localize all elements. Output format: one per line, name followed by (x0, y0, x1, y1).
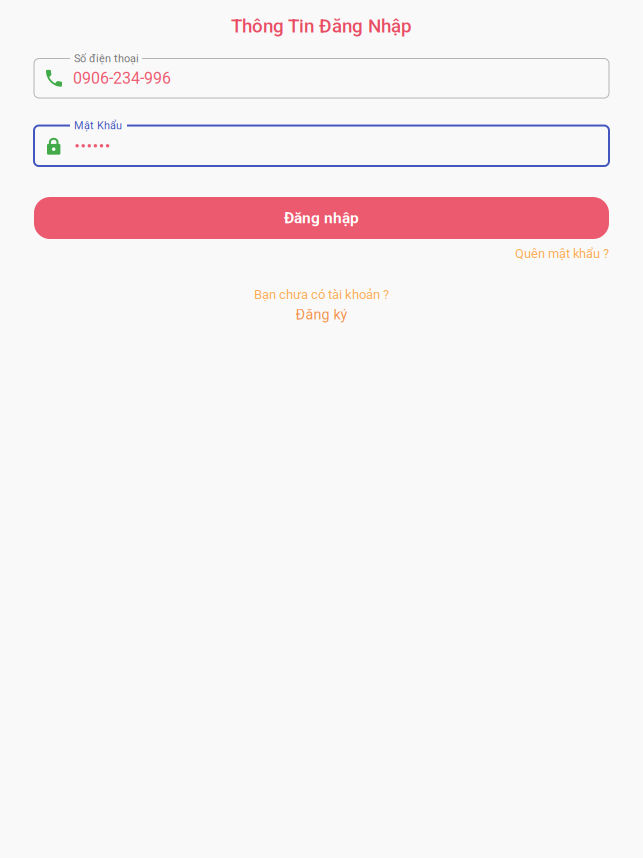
staticText: Mật Khẩu (74, 119, 122, 132)
button[interactable]: Quên mật khẩu ? (515, 246, 609, 261)
button[interactable]: Mật Khẩu (34, 119, 609, 166)
staticText: Quên mật khẩu ? (515, 246, 609, 261)
button[interactable]: Đăng nhập (34, 197, 609, 239)
staticText: Thông Tin Đăng Nhập (231, 15, 412, 37)
button[interactable]: Số điện thoại (34, 52, 609, 98)
button[interactable]: Đăng ký (34, 306, 609, 323)
staticText: Đăng ký (295, 306, 347, 323)
staticText: Đăng nhập (284, 209, 359, 227)
staticText: Số điện thoại (74, 52, 139, 65)
staticText: 0906-234-996 (73, 69, 171, 88)
staticText: Bạn chưa có tài khoản ? (254, 287, 389, 302)
